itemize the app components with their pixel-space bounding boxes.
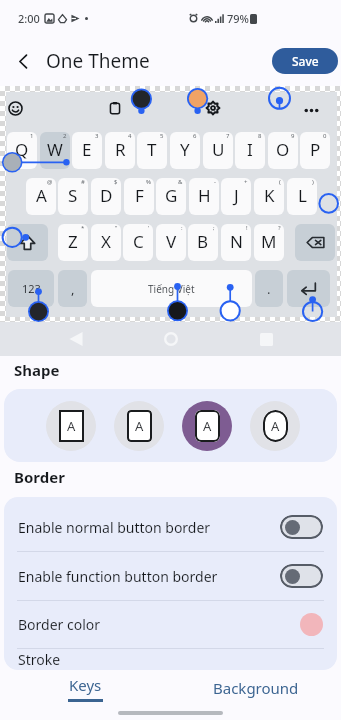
button[interactable]: Z	[58, 224, 88, 261]
staticText: Shape	[14, 360, 60, 380]
button[interactable]: Key shape option 1	[46, 401, 96, 451]
staticText: Keys	[69, 675, 102, 695]
button[interactable]: Save	[272, 48, 338, 74]
button[interactable]: Stroke	[4, 649, 337, 670]
button[interactable]: O	[268, 132, 298, 169]
button[interactable]: Enable normal button border	[4, 503, 337, 551]
staticText: )	[312, 178, 314, 186]
staticText: A	[203, 417, 212, 435]
staticText: Enable function button border	[18, 567, 218, 586]
button[interactable]: Home	[158, 326, 184, 352]
button[interactable]: Y	[170, 132, 200, 169]
staticText: -	[214, 178, 216, 186]
staticText: 9	[291, 132, 295, 140]
button[interactable]: D	[91, 178, 121, 215]
staticText: 1	[30, 132, 34, 140]
button[interactable]: U	[203, 132, 233, 169]
button[interactable]: Key shape option 3	[182, 401, 232, 451]
button[interactable]: Shift	[7, 224, 48, 261]
staticText: R	[115, 138, 126, 161]
button[interactable]: S	[58, 178, 88, 215]
staticText: Tiếng Việt	[148, 282, 195, 296]
button[interactable]: H	[189, 178, 219, 215]
button[interactable]: V	[156, 224, 186, 261]
staticText: S	[68, 184, 78, 207]
staticText: &	[178, 178, 183, 186]
staticText: %	[146, 178, 151, 186]
button[interactable]: ,	[58, 270, 87, 307]
staticText: Border	[14, 467, 65, 487]
staticText: (	[279, 178, 281, 186]
staticText: Z	[68, 230, 78, 253]
staticText: *	[81, 224, 85, 232]
button[interactable]: Enter	[287, 270, 330, 307]
button[interactable]: J	[221, 178, 251, 215]
staticText: G	[165, 184, 178, 207]
button[interactable]: .	[255, 270, 283, 307]
staticText: Stroke	[18, 650, 61, 669]
button[interactable]: Tiếng Việt	[91, 270, 252, 307]
button[interactable]: I	[235, 132, 265, 169]
staticText: Save	[292, 53, 319, 69]
button[interactable]: E	[72, 132, 102, 169]
button[interactable]: Key shape option 2	[114, 401, 164, 451]
staticText: H	[198, 184, 211, 207]
staticText: 8	[258, 132, 262, 140]
button[interactable]: Back	[63, 326, 89, 352]
staticText: L	[298, 184, 307, 207]
button[interactable]: P	[300, 132, 330, 169]
staticText: 5	[160, 132, 164, 140]
staticText: Y	[180, 138, 190, 161]
staticText: J	[234, 184, 239, 207]
staticText: U	[212, 138, 225, 161]
button[interactable]: Border colour	[300, 613, 323, 636]
button[interactable]: X	[91, 224, 121, 261]
button[interactable]: C	[123, 224, 153, 261]
button[interactable]: T	[137, 132, 167, 169]
button[interactable]: More options	[304, 103, 319, 118]
button[interactable]: Settings	[206, 101, 220, 115]
button[interactable]: Keys	[0, 670, 170, 706]
staticText: A	[135, 417, 144, 435]
staticText: 123	[22, 281, 41, 296]
button[interactable]: Border color	[4, 601, 337, 648]
button[interactable]: Recents	[253, 326, 279, 352]
staticText: F	[135, 184, 144, 207]
button[interactable]: Emoji	[8, 101, 23, 116]
button[interactable]: K	[254, 178, 284, 215]
button[interactable]: G	[156, 178, 186, 215]
staticText: O	[276, 138, 290, 161]
button[interactable]: Enable function button border	[4, 552, 337, 600]
button[interactable]: M	[254, 224, 284, 261]
staticText: E	[82, 138, 92, 161]
staticText: ?	[278, 224, 281, 232]
button[interactable]: N	[221, 224, 251, 261]
button[interactable]: Back	[6, 44, 40, 78]
button[interactable]: Toggle off	[280, 515, 323, 539]
staticText: 3	[95, 132, 99, 140]
staticText: One Theme	[46, 48, 150, 74]
staticText: $	[114, 178, 118, 186]
button[interactable]: Toggle off	[280, 564, 323, 588]
button[interactable]: W	[40, 132, 70, 169]
button[interactable]: Q	[7, 132, 37, 169]
button[interactable]: Background	[170, 670, 341, 706]
staticText: A	[36, 184, 47, 207]
staticText: 4	[128, 132, 132, 140]
button[interactable]: Clipboard	[109, 102, 121, 114]
staticText: X	[101, 230, 111, 253]
staticText: 7	[226, 132, 230, 140]
button[interactable]: A	[26, 178, 56, 215]
button[interactable]: Backspace	[295, 224, 335, 261]
staticText: '	[148, 224, 150, 232]
button[interactable]: 123	[8, 270, 54, 307]
button[interactable]: B	[188, 224, 218, 261]
staticText: #	[81, 178, 85, 186]
button[interactable]: R	[105, 132, 135, 169]
button[interactable]: Key shape option 4	[250, 401, 300, 451]
button[interactable]: L	[287, 178, 317, 215]
staticText: ,	[71, 280, 75, 298]
staticText: A	[271, 417, 280, 435]
button[interactable]: F	[124, 178, 154, 215]
staticText: B	[197, 230, 209, 253]
